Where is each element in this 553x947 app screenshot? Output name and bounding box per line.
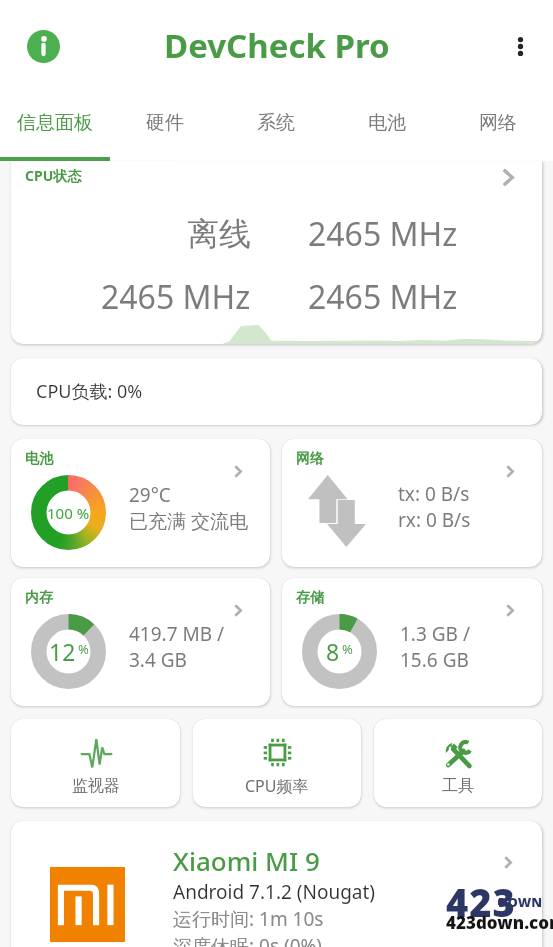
staticText: 1.3 GB / bbox=[400, 621, 470, 647]
staticText: 8 bbox=[326, 636, 340, 667]
staticText: CPU频率 bbox=[245, 775, 309, 797]
staticText: 运行时间: 1m 10s bbox=[173, 906, 324, 932]
staticText: CPU状态 bbox=[25, 166, 82, 185]
staticText: 电池 bbox=[25, 450, 53, 468]
button[interactable]: 存储 bbox=[282, 578, 542, 706]
staticText: 网络 bbox=[479, 111, 517, 135]
staticText: 423down.com bbox=[446, 911, 553, 934]
button[interactable]: 内存 bbox=[11, 578, 270, 706]
button[interactable]: CPU负载: 0% bbox=[11, 358, 542, 425]
staticText: 电池 bbox=[368, 111, 406, 135]
staticText: 2465 MHz bbox=[308, 212, 458, 256]
staticText: 监视器 bbox=[72, 776, 120, 796]
button[interactable]: Xiaomi MI 9 bbox=[11, 821, 542, 947]
staticText: 29°C bbox=[129, 482, 171, 508]
button[interactable]: 网络 bbox=[282, 439, 542, 567]
staticText: Xiaomi MI 9 bbox=[173, 843, 320, 878]
button[interactable]: Monitor bbox=[11, 719, 180, 807]
staticText: DevCheck Pro bbox=[164, 23, 390, 68]
button[interactable]: 硬件 bbox=[110, 92, 220, 161]
staticText: 15.6 GB bbox=[400, 647, 469, 673]
button[interactable]: 系统 bbox=[220, 92, 331, 161]
staticText: 硬件 bbox=[146, 111, 184, 135]
button[interactable]: About DevCheck bbox=[19, 22, 67, 70]
staticText: 423 bbox=[446, 876, 516, 928]
staticText: rx: 0 B/s bbox=[398, 507, 471, 533]
button[interactable]: More options bbox=[497, 23, 543, 69]
staticText: Android 7.1.2 (Nougat) bbox=[173, 879, 376, 905]
staticText: 存储 bbox=[296, 589, 324, 607]
button[interactable]: 网络 bbox=[442, 92, 553, 161]
staticText: % bbox=[78, 640, 89, 658]
staticText: 离线 bbox=[187, 214, 251, 254]
staticText: 深度休眠: 0s (0%) bbox=[173, 933, 322, 947]
staticText: 网络 bbox=[296, 450, 324, 468]
staticText: DOWN bbox=[498, 893, 543, 911]
staticText: % bbox=[342, 640, 353, 658]
button[interactable]: 电池 bbox=[11, 439, 270, 567]
button[interactable]: CPU frequency bbox=[193, 719, 361, 807]
button[interactable]: 信息面板 bbox=[0, 92, 110, 161]
button[interactable]: 电池 bbox=[331, 92, 442, 161]
staticText: 信息面板 bbox=[17, 111, 93, 135]
button[interactable]: Tools bbox=[374, 719, 542, 807]
staticText: 419.7 MB / bbox=[129, 621, 225, 647]
staticText: 2465 MHz bbox=[101, 275, 251, 319]
staticText: 12 bbox=[49, 636, 76, 667]
staticText: 内存 bbox=[25, 589, 53, 607]
staticText: tx: 0 B/s bbox=[398, 481, 470, 507]
button[interactable]: CPU状态 bbox=[11, 161, 542, 344]
staticText: 3.4 GB bbox=[129, 647, 187, 673]
staticText: 100 % bbox=[47, 503, 90, 523]
staticText: 2465 MHz bbox=[308, 275, 458, 319]
staticText: 已充满 交流电 bbox=[129, 508, 248, 534]
staticText: 工具 bbox=[442, 776, 474, 796]
staticText: CPU负载: 0% bbox=[36, 379, 143, 404]
staticText: 系统 bbox=[257, 111, 295, 135]
